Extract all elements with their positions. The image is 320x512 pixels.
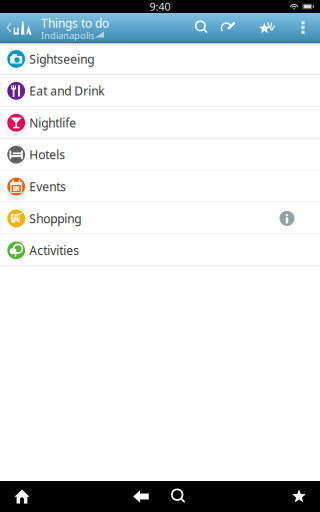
button[interactable]: Favorites [277,481,320,512]
button[interactable]: Hotels [0,139,320,171]
staticText: Nightlife [29,115,76,131]
button[interactable]: Things to do [41,13,129,42]
staticText: Indianapolis [41,29,94,42]
button[interactable]: Search [157,481,201,512]
button[interactable]: Shopping [0,202,320,234]
button[interactable]: Edit [215,13,241,42]
staticText: Things to do [41,15,109,31]
button[interactable]: Sightseeing [0,43,320,75]
button[interactable]: Nightlife [0,107,320,139]
button[interactable]: Search [189,13,215,42]
button[interactable]: 12 [0,171,320,202]
button[interactable]: More options [292,13,314,42]
button[interactable]: Back [119,481,163,512]
button[interactable]: Favorites [253,13,281,42]
button[interactable]: Activities [0,234,320,266]
staticText: Activities [29,242,79,258]
staticText: Sightseeing [29,51,94,67]
button[interactable]: Home [0,481,44,512]
staticText: Shopping [29,210,81,226]
staticText: Eat and Drink [29,83,104,99]
staticText: Events [29,179,66,194]
button[interactable]: Eat and Drink [0,75,320,107]
staticText: 12 [13,185,19,192]
button[interactable]: Back [1,13,38,42]
staticText: Hotels [29,147,65,163]
staticText: 9:40 [149,0,170,14]
